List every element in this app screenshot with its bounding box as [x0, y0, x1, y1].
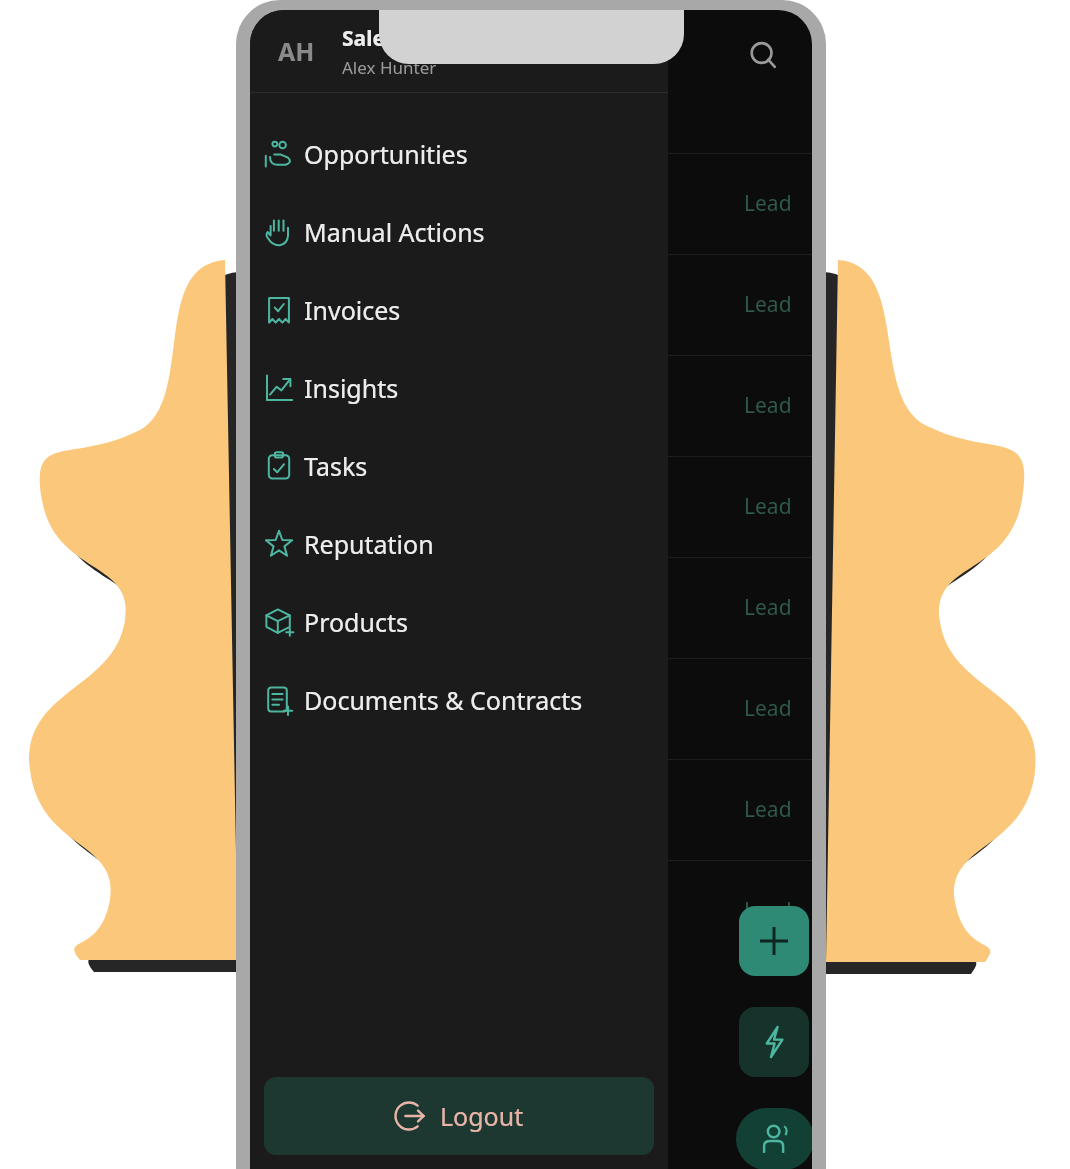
button[interactable]: Opportunities: [264, 115, 668, 193]
button[interactable]: Lead: [250, 658, 812, 759]
staticText: Lead: [744, 795, 792, 824]
button[interactable]: Documents & Contracts: [264, 661, 668, 739]
staticText: Products: [304, 605, 408, 639]
staticText: Documents & Contracts: [304, 683, 583, 717]
staticText: Invoices: [304, 293, 401, 327]
button[interactable]: Logout: [264, 1077, 654, 1155]
button[interactable]: Reputation: [264, 505, 668, 583]
button[interactable]: Products: [264, 583, 668, 661]
button[interactable]: Search: [736, 28, 792, 84]
staticText: Lead: [744, 593, 792, 622]
button[interactable]: Lead: [250, 759, 812, 860]
button[interactable]: Lead: [250, 254, 812, 355]
button[interactable]: AH: [250, 10, 668, 92]
button[interactable]: Add: [739, 906, 809, 976]
staticText: Tasks: [304, 449, 368, 483]
button[interactable]: Insights: [264, 349, 668, 427]
staticText: Lead: [744, 290, 792, 319]
button[interactable]: Contacts: [736, 1108, 812, 1169]
staticText: Lead: [744, 391, 792, 420]
staticText: Insights: [304, 371, 399, 405]
button[interactable]: Quick action: [739, 1007, 809, 1077]
staticText: Opportunities: [304, 137, 468, 171]
staticText: Alex Hunter: [342, 56, 437, 79]
staticText: Lead: [744, 896, 792, 925]
button[interactable]: Invoices: [264, 271, 668, 349]
staticText: Reputation: [304, 527, 434, 561]
button[interactable]: Lead: [250, 557, 812, 658]
staticText: Manual Actions: [304, 215, 485, 249]
button[interactable]: Tasks: [264, 427, 668, 505]
button[interactable]: Lead: [250, 456, 812, 557]
staticText: Lead: [744, 694, 792, 723]
staticText: Logout: [440, 1099, 524, 1133]
staticText: Lead: [744, 492, 792, 521]
button[interactable]: Manual Actions: [264, 193, 668, 271]
staticText: Sales (Ce: [342, 24, 435, 53]
button[interactable]: Lead: [250, 860, 812, 961]
staticText: AH: [278, 34, 315, 68]
staticText: Lead: [744, 189, 792, 218]
button[interactable]: Lead: [250, 153, 812, 254]
button[interactable]: Lead: [250, 355, 812, 456]
